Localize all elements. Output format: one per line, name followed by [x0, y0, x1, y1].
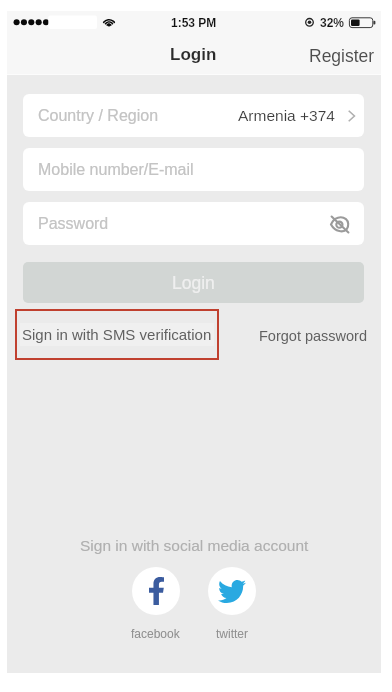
staticText: Login — [170, 45, 217, 64]
staticText: twitter — [216, 627, 249, 640]
staticText: Mobile number/E-mail — [38, 161, 194, 179]
staticText: Password — [38, 215, 109, 233]
staticText: 1:53 PM — [171, 16, 217, 29]
button[interactable]: Register — [302, 37, 381, 75]
staticText: Sign in with SMS verification — [22, 326, 212, 343]
button[interactable]: Password — [23, 202, 364, 245]
staticText: Forgot password — [259, 328, 367, 344]
staticText: Register — [309, 46, 375, 66]
staticText: 32% — [320, 16, 345, 29]
button[interactable]: Login — [23, 262, 364, 303]
staticText: facebook — [131, 627, 180, 640]
staticText: Country / Region — [38, 107, 159, 125]
staticText: Sign in with social media account — [80, 537, 309, 554]
button[interactable]: Sign in with SMS verification — [15, 309, 219, 360]
button[interactable]: Mobile number/E-mail — [23, 148, 364, 191]
staticText: Armenia +374 — [238, 107, 335, 124]
button[interactable]: Forgot password — [253, 322, 373, 350]
button[interactable]: Login — [170, 35, 217, 73]
button[interactable]: Show password — [328, 212, 352, 236]
staticText: Login — [172, 273, 215, 293]
button[interactable]: Country / Region — [23, 94, 364, 137]
button[interactable]: Sign in with Facebook — [132, 567, 180, 615]
button[interactable]: Sign in with Twitter — [208, 567, 256, 615]
